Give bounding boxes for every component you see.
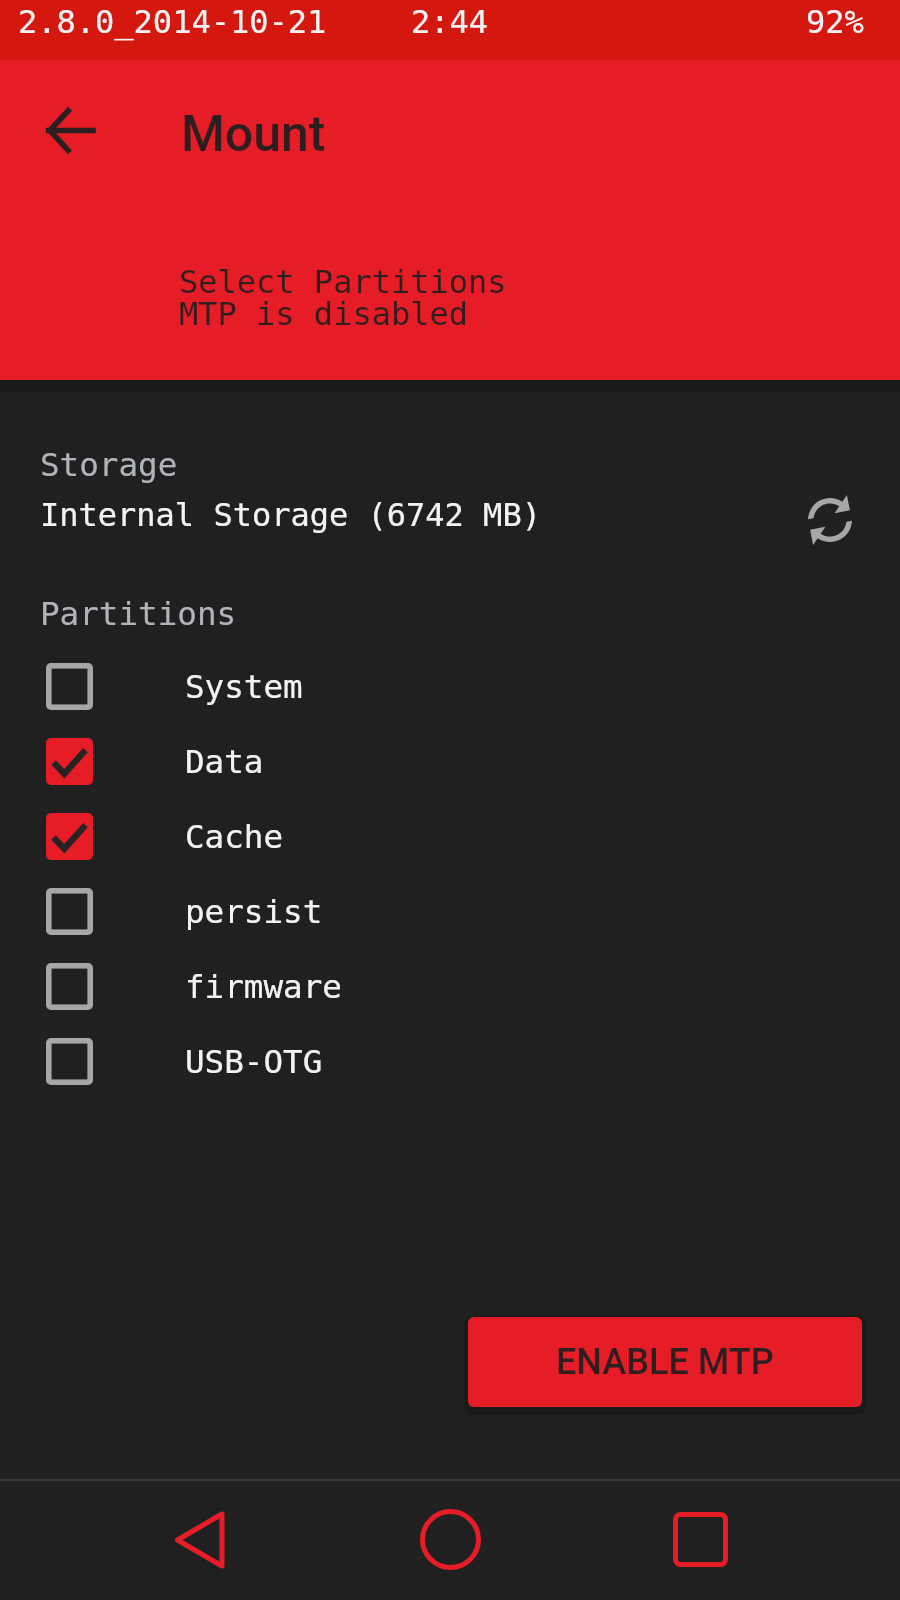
staticText: System [185, 668, 303, 706]
button[interactable]: Cache [0, 799, 900, 874]
button[interactable]: Recent apps [625, 1479, 775, 1600]
staticText: MTP is disabled [179, 295, 468, 332]
button[interactable]: Navigate back [22, 82, 118, 178]
button[interactable]: Refresh storage list [780, 470, 880, 570]
staticText: Select Partitions [179, 263, 507, 300]
staticText: USB-OTG [185, 1043, 323, 1081]
staticText: Mount [181, 105, 326, 164]
button[interactable]: persist [0, 874, 900, 949]
staticText: firmware [185, 968, 342, 1006]
staticText: ENABLE MTP [556, 1341, 774, 1383]
staticText: 2:44 [411, 3, 489, 40]
button[interactable]: USB-OTG [0, 1024, 900, 1099]
button[interactable]: ENABLE MTP [468, 1317, 862, 1407]
button[interactable]: firmware [0, 949, 900, 1024]
button[interactable]: Home [375, 1479, 525, 1600]
staticText: Cache [185, 818, 284, 856]
staticText: 92% [806, 3, 864, 40]
staticText: Data [185, 743, 264, 781]
button[interactable]: Back [124, 1479, 274, 1600]
staticText: Storage [40, 446, 178, 484]
staticText: Partitions [40, 595, 237, 633]
staticText: persist [185, 893, 323, 931]
button[interactable]: System [0, 649, 900, 724]
staticText: 2.8.0_2014-10-21 [18, 3, 327, 40]
button[interactable]: Data [0, 724, 900, 799]
staticText: Internal Storage (6742 MB) [40, 496, 541, 533]
